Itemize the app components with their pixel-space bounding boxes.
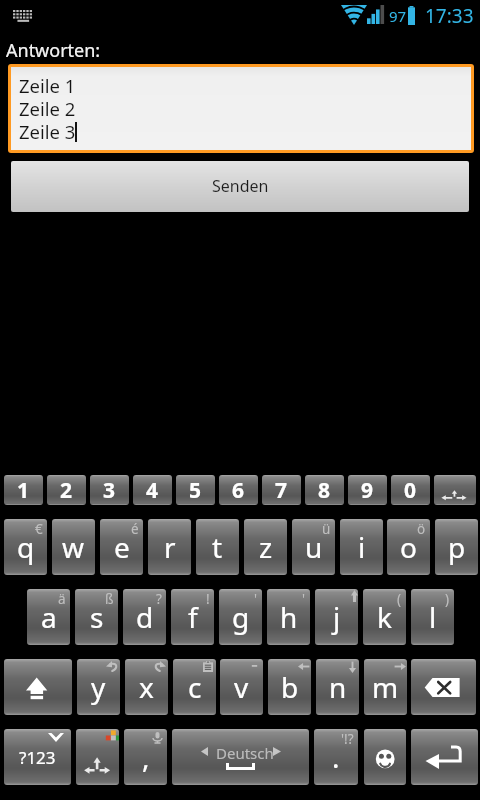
staticText: ! bbox=[206, 590, 210, 608]
staticText: ' bbox=[302, 590, 306, 608]
staticText: 8 bbox=[318, 476, 331, 505]
staticText: x bbox=[139, 668, 154, 706]
staticText: ' bbox=[254, 590, 258, 608]
button[interactable]: d bbox=[123, 589, 166, 645]
button[interactable]: 4 bbox=[133, 475, 172, 505]
button[interactable]: s bbox=[75, 589, 118, 645]
staticText: r bbox=[164, 528, 176, 566]
staticText: c bbox=[188, 668, 202, 706]
button[interactable]: Tab bbox=[434, 475, 476, 505]
staticText: w bbox=[62, 528, 85, 566]
staticText: € bbox=[35, 520, 43, 538]
staticText: l bbox=[429, 598, 437, 636]
staticText: 0 bbox=[404, 476, 417, 505]
staticText: b bbox=[281, 668, 299, 706]
button[interactable]: Emoji bbox=[364, 729, 406, 785]
staticText: o bbox=[400, 528, 417, 566]
staticText: u bbox=[305, 528, 323, 566]
staticText: Deutsch bbox=[216, 743, 274, 763]
button[interactable]: n bbox=[316, 659, 359, 715]
staticText: '!? bbox=[341, 730, 354, 748]
button[interactable]: 8 bbox=[305, 475, 344, 505]
staticText: ?123 bbox=[19, 746, 56, 769]
button[interactable]: b bbox=[268, 659, 311, 715]
staticText: s bbox=[90, 598, 104, 636]
staticText: 7 bbox=[275, 476, 288, 505]
staticText: ü bbox=[322, 520, 331, 538]
button[interactable]: 5 bbox=[176, 475, 215, 505]
button[interactable]: Comma bbox=[124, 729, 167, 785]
staticText: 9 bbox=[361, 476, 374, 505]
staticText: y bbox=[91, 668, 106, 706]
button[interactable]: o bbox=[387, 519, 430, 575]
button[interactable]: 2 bbox=[47, 475, 86, 505]
button[interactable]: i bbox=[340, 519, 383, 575]
button[interactable]: 6 bbox=[219, 475, 258, 505]
button[interactable]: Enter bbox=[411, 729, 478, 785]
staticText: p bbox=[448, 528, 466, 566]
button[interactable]: Symbols bbox=[4, 729, 71, 785]
staticText: ä bbox=[58, 590, 66, 608]
staticText: d bbox=[136, 598, 154, 636]
staticText: q bbox=[17, 528, 35, 566]
button[interactable]: z bbox=[244, 519, 287, 575]
button[interactable]: k bbox=[363, 589, 406, 645]
staticText: Senden bbox=[212, 175, 269, 197]
button[interactable]: Space bbox=[172, 729, 309, 785]
button[interactable]: u bbox=[292, 519, 335, 575]
staticText: ( bbox=[397, 590, 402, 608]
button[interactable]: Zeile 1 Zeile 2 Zeile 3 bbox=[8, 64, 474, 153]
staticText: ? bbox=[156, 590, 162, 608]
button[interactable]: a bbox=[27, 589, 70, 645]
button[interactable]: v bbox=[220, 659, 263, 715]
button[interactable]: l bbox=[411, 589, 454, 645]
button[interactable]: 3 bbox=[90, 475, 129, 505]
button[interactable]: 7 bbox=[262, 475, 301, 505]
button[interactable]: h bbox=[267, 589, 310, 645]
button[interactable]: r bbox=[148, 519, 191, 575]
staticText: i bbox=[358, 528, 366, 566]
staticText: e bbox=[114, 528, 130, 566]
staticText: g bbox=[232, 598, 250, 636]
button[interactable]: c bbox=[173, 659, 216, 715]
button[interactable]: Senden bbox=[11, 161, 469, 212]
staticText: . bbox=[332, 738, 340, 776]
button[interactable]: j bbox=[315, 589, 358, 645]
staticText: v bbox=[234, 668, 249, 706]
staticText: m bbox=[372, 668, 399, 706]
staticText: n bbox=[329, 668, 347, 706]
button[interactable]: t bbox=[196, 519, 239, 575]
button[interactable]: p bbox=[435, 519, 478, 575]
button[interactable]: x bbox=[125, 659, 168, 715]
button[interactable]: Backspace bbox=[411, 659, 476, 715]
staticText: z bbox=[259, 528, 273, 566]
button[interactable]: w bbox=[52, 519, 95, 575]
button[interactable]: 1 bbox=[4, 475, 43, 505]
staticText: 1 bbox=[17, 476, 30, 505]
staticText: Zeile 1 Zeile 2 Zeile 3 bbox=[19, 73, 76, 144]
button[interactable]: 9 bbox=[348, 475, 387, 505]
button[interactable]: y bbox=[77, 659, 120, 715]
staticText: a bbox=[41, 598, 57, 636]
staticText: j bbox=[333, 598, 341, 636]
staticText: k bbox=[377, 598, 392, 636]
button[interactable]: g bbox=[219, 589, 262, 645]
button[interactable]: q bbox=[4, 519, 47, 575]
button[interactable]: Period bbox=[314, 729, 358, 785]
button[interactable]: 0 bbox=[391, 475, 430, 505]
staticText: 3 bbox=[103, 476, 116, 505]
staticText: t bbox=[212, 528, 223, 566]
staticText: Antworten: bbox=[6, 38, 101, 63]
staticText: é bbox=[131, 520, 139, 538]
staticText: 6 bbox=[232, 476, 245, 505]
button[interactable]: e bbox=[100, 519, 143, 575]
button[interactable]: Move cursor bbox=[76, 729, 119, 785]
staticText: f bbox=[188, 598, 198, 636]
button[interactable]: Shift bbox=[4, 659, 72, 715]
button[interactable]: f bbox=[171, 589, 214, 645]
button[interactable]: m bbox=[364, 659, 407, 715]
staticText: ö bbox=[417, 520, 426, 538]
staticText: 4 bbox=[146, 476, 159, 505]
staticText: 17:33 bbox=[425, 3, 474, 29]
staticText: , bbox=[142, 738, 150, 776]
